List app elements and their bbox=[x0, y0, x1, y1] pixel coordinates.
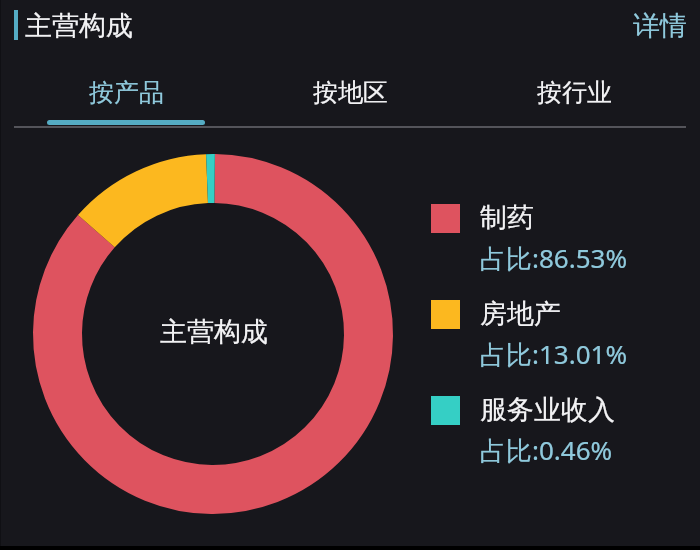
staticText: 主营构成 bbox=[160, 315, 268, 349]
staticText: 占比:86.53% bbox=[480, 240, 628, 276]
button[interactable]: 房地产 bbox=[431, 300, 628, 375]
staticText: 占比:13.01% bbox=[480, 336, 628, 372]
staticText: 制药 bbox=[480, 201, 534, 235]
button[interactable]: 按地区 bbox=[238, 50, 462, 128]
button[interactable]: 按行业 bbox=[462, 50, 686, 128]
other: 主营构成饼图 bbox=[33, 154, 393, 514]
staticText: 按地区 bbox=[313, 77, 388, 108]
staticText: 服务业收入 bbox=[480, 393, 615, 427]
button[interactable]: 详情 bbox=[618, 0, 700, 50]
button[interactable]: 制药 bbox=[431, 204, 628, 279]
staticText: 主营构成 bbox=[25, 9, 133, 43]
staticText: 占比:0.46% bbox=[480, 432, 613, 468]
staticText: 详情 bbox=[633, 9, 687, 43]
staticText: 按行业 bbox=[537, 77, 612, 108]
staticText: 房地产 bbox=[480, 297, 561, 331]
button[interactable]: 按产品 bbox=[14, 50, 238, 128]
staticText: 按产品 bbox=[89, 77, 164, 108]
button[interactable]: 服务业收入 bbox=[431, 396, 615, 471]
